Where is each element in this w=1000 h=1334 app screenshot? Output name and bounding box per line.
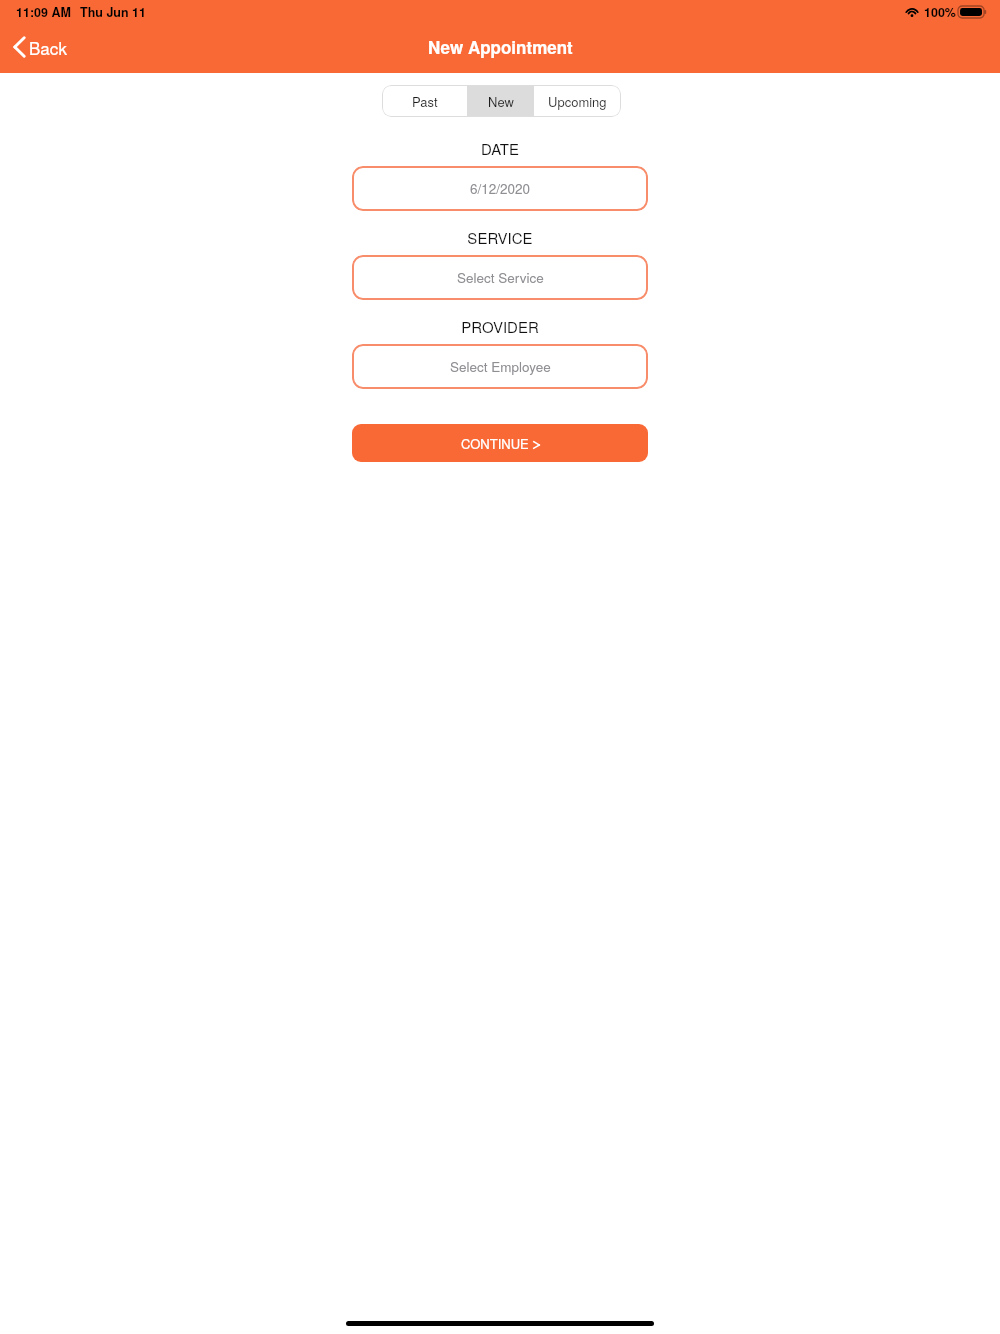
staticText: PROVIDER [0, 316, 1000, 337]
staticText: Thu Jun 11 [80, 3, 146, 21]
staticText: New Appointment [428, 35, 573, 59]
button[interactable]: Upcoming [534, 85, 621, 117]
staticText: 11:09 AM [16, 3, 71, 21]
staticText: CONTINUE [461, 434, 529, 453]
staticText: 6/12/2020 [470, 179, 531, 198]
staticText: Upcoming [548, 92, 607, 111]
staticText: Select Employee [450, 357, 551, 376]
button[interactable]: Select Employee [352, 344, 648, 389]
other: Back [13, 36, 26, 58]
staticText: Select Service [457, 268, 544, 287]
button[interactable]: New [467, 85, 534, 117]
button[interactable]: Past [382, 85, 467, 117]
button[interactable]: 6/12/2020 [352, 166, 648, 211]
button[interactable]: Back [0, 24, 81, 69]
staticText: Back [29, 35, 67, 59]
staticText: 100% [924, 3, 956, 21]
button[interactable]: Select Service [352, 255, 648, 300]
staticText: New [488, 92, 514, 111]
staticText: SERVICE [0, 227, 1000, 248]
staticText: Past [412, 92, 438, 111]
staticText: DATE [0, 138, 1000, 159]
button[interactable]: CONTINUE [352, 424, 648, 462]
